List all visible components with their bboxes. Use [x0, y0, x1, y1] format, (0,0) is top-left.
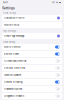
staticText: Content Blocking	[4, 80, 22, 83]
staticText: Notify Service	[4, 45, 20, 48]
button[interactable]: Silence and Override	[2, 58, 62, 64]
staticText: Notice Policy	[4, 23, 19, 26]
button[interactable]: Notice Policy	[2, 22, 62, 28]
button[interactable]: Notify Service	[2, 44, 62, 50]
button[interactable]: Diagnostic Reports	[2, 93, 62, 99]
button[interactable]: Customize Profile	[2, 15, 62, 21]
staticText: Diagnostic Reports	[4, 94, 24, 97]
button[interactable]: Advanced Options	[2, 86, 62, 92]
staticText: Settings	[2, 6, 15, 10]
staticText: Location Updates	[4, 73, 21, 76]
button[interactable]: Battery Saver	[2, 51, 62, 57]
button[interactable]: Cellular Data Sync	[2, 65, 62, 71]
staticText: 9:41	[3, 1, 8, 4]
staticText: ıll ≋ ▰	[52, 1, 61, 4]
staticText: Battery Saver	[4, 52, 19, 55]
staticText: Silence and Override	[4, 59, 26, 62]
staticText: Page Message	[3, 30, 16, 32]
staticText: Cellular Data Sync	[4, 66, 25, 69]
button[interactable]: Location Updates	[2, 72, 62, 78]
staticText: Enable Blocking	[3, 41, 15, 43]
staticText: Send Page Message	[4, 34, 24, 37]
button[interactable]: Content Blocking	[2, 79, 62, 85]
button[interactable]: Send Page Message	[2, 33, 62, 39]
staticText: Advanced Options	[4, 87, 22, 90]
staticText: Customize Profile	[4, 16, 24, 19]
staticText: Profile Settings	[3, 12, 16, 14]
